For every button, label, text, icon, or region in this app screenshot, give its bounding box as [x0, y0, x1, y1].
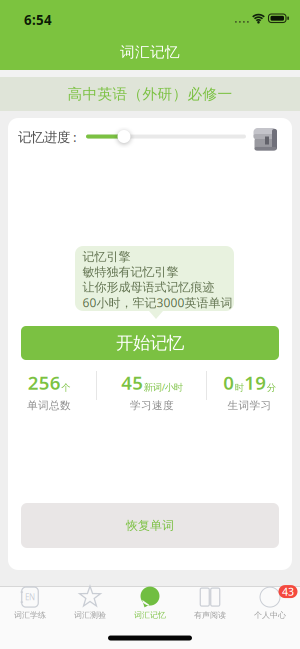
- staticText: 高中英语（外研）必修一: [67, 85, 232, 103]
- staticText: 分: [267, 382, 276, 393]
- staticText: 45: [121, 370, 143, 395]
- staticText: 0: [223, 370, 234, 395]
- button[interactable]: 宝箱奖励: [253, 127, 278, 152]
- staticText: 单词总数: [27, 399, 71, 412]
- button[interactable]: EN: [0, 587, 60, 620]
- button[interactable]: 词汇测验: [60, 587, 120, 620]
- staticText: 43: [282, 584, 294, 599]
- staticText: 记忆进度 :: [18, 128, 77, 146]
- staticText: 开始记忆: [116, 332, 184, 354]
- button[interactable]: 恢复单词: [21, 503, 279, 548]
- staticText: 有声阅读: [194, 610, 226, 620]
- staticText: 19: [244, 370, 266, 395]
- button[interactable]: 开始记忆: [21, 326, 279, 360]
- staticText: 生词学习: [227, 399, 271, 412]
- staticText: 敏特独有记忆引擎: [82, 265, 178, 279]
- staticText: 记忆引擎: [82, 249, 130, 264]
- staticText: 词汇学练: [14, 610, 46, 620]
- button[interactable]: 43: [240, 587, 300, 620]
- button[interactable]: 词汇记忆: [120, 587, 180, 620]
- staticText: 60小时，牢记3000英语单词: [82, 295, 232, 310]
- staticText: 个: [61, 382, 70, 393]
- staticText: 词汇记忆: [134, 610, 166, 620]
- staticText: 词汇记忆: [120, 43, 180, 61]
- staticText: 让你形成母语式记忆痕迹: [82, 280, 214, 295]
- staticText: 词汇测验: [74, 610, 106, 620]
- staticText: 时: [235, 382, 244, 393]
- staticText: 恢复单词: [126, 518, 174, 533]
- button[interactable]: 高中英语（外研）必修一: [0, 77, 300, 111]
- staticText: 256: [28, 370, 61, 395]
- button[interactable]: 有声阅读: [180, 587, 240, 620]
- staticText: 学习速度: [130, 399, 174, 412]
- staticText: 新词/小时: [144, 381, 183, 393]
- staticText: 个人中心: [254, 610, 286, 620]
- staticText: EN: [25, 592, 35, 602]
- staticText: 6:54: [24, 11, 52, 29]
